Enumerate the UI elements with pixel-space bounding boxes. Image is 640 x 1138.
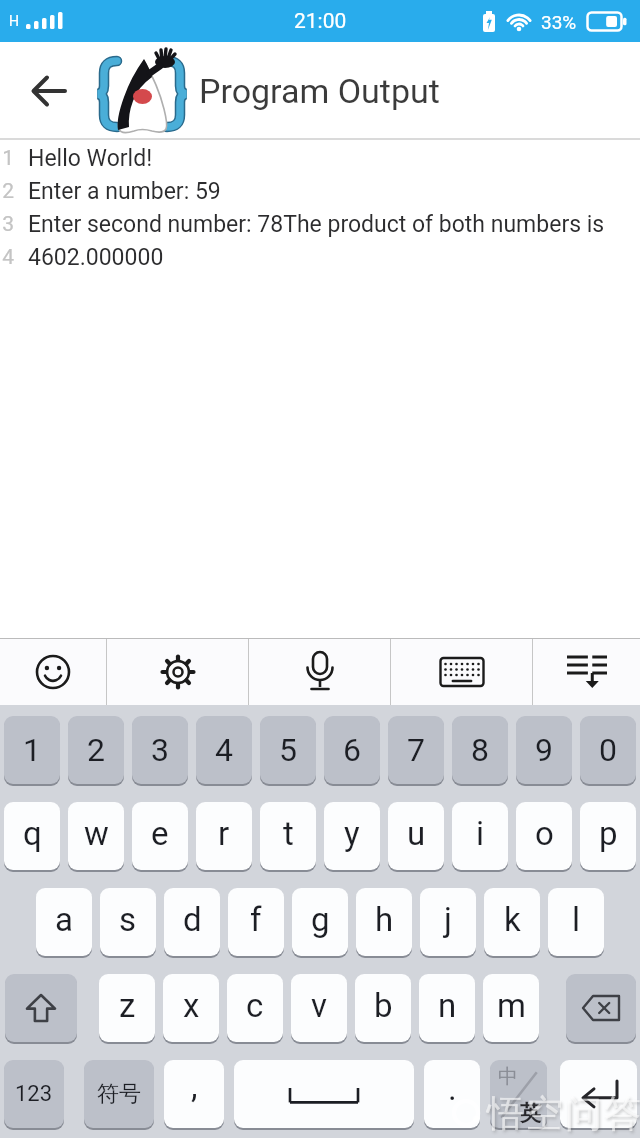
staticText: Enter a number: 59	[28, 178, 221, 205]
button[interactable]: b	[355, 974, 411, 1042]
button[interactable]: p	[580, 802, 636, 870]
button[interactable]: u	[388, 802, 444, 870]
button[interactable]: r	[196, 802, 252, 870]
staticText: x	[183, 986, 200, 1025]
staticText: 5	[279, 731, 297, 769]
button[interactable]: y	[324, 802, 380, 870]
button[interactable]	[107, 638, 248, 705]
button[interactable]	[566, 974, 636, 1042]
staticText: Program Output	[199, 71, 440, 111]
staticText: a	[55, 900, 73, 939]
button[interactable]: c	[227, 974, 283, 1042]
staticText: d	[183, 900, 202, 939]
button[interactable]: l	[548, 888, 604, 956]
button[interactable]: i	[452, 802, 508, 870]
staticText: 4602.000000	[28, 244, 164, 271]
staticText: 4	[0, 245, 14, 270]
staticText: 7	[407, 731, 425, 769]
button[interactable]: j	[420, 888, 476, 956]
button[interactable]: 4	[196, 716, 252, 784]
staticText: p	[599, 814, 618, 853]
staticText: ,	[191, 1067, 198, 1106]
staticText: 123	[15, 1081, 53, 1107]
button[interactable]: e	[132, 802, 188, 870]
button[interactable]	[5, 974, 77, 1042]
button[interactable]: s	[100, 888, 156, 956]
staticText: y	[344, 814, 360, 853]
button[interactable]: g	[292, 888, 348, 956]
staticText: z	[119, 986, 136, 1025]
button[interactable]: z	[99, 974, 155, 1042]
button[interactable]	[391, 638, 532, 705]
staticText: 3	[151, 731, 169, 769]
button[interactable]	[0, 638, 106, 705]
staticText: t	[283, 814, 294, 853]
staticText: 33%	[541, 11, 577, 33]
button[interactable]: a	[36, 888, 92, 956]
button[interactable]: d	[164, 888, 220, 956]
staticText: u	[407, 814, 426, 853]
staticText: 4	[215, 731, 233, 769]
staticText: s	[119, 900, 137, 939]
button[interactable]: n	[419, 974, 475, 1042]
button[interactable]: .	[424, 1060, 480, 1128]
button[interactable]: 0	[580, 716, 636, 784]
button[interactable]: m	[483, 974, 539, 1042]
staticText: e	[151, 814, 169, 853]
staticText: 6	[343, 731, 361, 769]
button[interactable]	[234, 1060, 414, 1128]
staticText: g	[311, 900, 330, 939]
staticText: 中	[498, 1064, 518, 1089]
button[interactable]: 7	[388, 716, 444, 784]
button[interactable]: 符号	[84, 1060, 154, 1128]
staticText: 2	[87, 731, 105, 769]
staticText: 悟空问答	[486, 1090, 640, 1137]
button[interactable]: v	[291, 974, 347, 1042]
staticText: b	[374, 986, 393, 1025]
staticText: h	[375, 900, 394, 939]
staticText: H	[9, 13, 19, 29]
button[interactable]: 123	[4, 1060, 64, 1128]
button[interactable]: 3	[132, 716, 188, 784]
staticText: v	[311, 986, 327, 1025]
staticText: 符号	[97, 1080, 141, 1108]
button[interactable]: 1	[4, 716, 60, 784]
staticText: n	[438, 986, 457, 1025]
button[interactable]: 5	[260, 716, 316, 784]
button[interactable]: k	[484, 888, 540, 956]
staticText: 8	[471, 731, 489, 769]
staticText: Hello World!	[28, 145, 153, 172]
button[interactable]: ,	[164, 1060, 224, 1128]
button[interactable]: 2	[68, 716, 124, 784]
staticText: 21:00	[294, 9, 347, 34]
button[interactable]: q	[4, 802, 60, 870]
button[interactable]: t	[260, 802, 316, 870]
button[interactable]: o	[516, 802, 572, 870]
button[interactable]: h	[356, 888, 412, 956]
button[interactable]	[12, 42, 86, 140]
button[interactable]	[533, 638, 640, 705]
staticText: o	[535, 814, 554, 853]
button[interactable]: f	[228, 888, 284, 956]
button[interactable]	[560, 1060, 637, 1128]
staticText: 3	[0, 212, 14, 237]
button[interactable]: x	[163, 974, 219, 1042]
staticText: m	[497, 986, 526, 1025]
staticText: k	[504, 900, 521, 939]
staticText: 2	[0, 179, 14, 204]
button[interactable]: 中	[490, 1060, 547, 1128]
staticText: Enter second number: 78The product of bo…	[28, 211, 605, 238]
staticText: i	[476, 814, 485, 853]
staticText: j	[444, 900, 452, 939]
staticText: r	[218, 814, 230, 853]
button[interactable]	[249, 638, 390, 705]
button[interactable]: 8	[452, 716, 508, 784]
staticText: w	[84, 814, 109, 853]
staticText: 英	[520, 1100, 541, 1126]
staticText: l	[572, 900, 581, 939]
button[interactable]: w	[68, 802, 124, 870]
button[interactable]: 6	[324, 716, 380, 784]
staticText: .	[448, 1069, 457, 1108]
button[interactable]: 9	[516, 716, 572, 784]
staticText: 1	[0, 146, 14, 171]
